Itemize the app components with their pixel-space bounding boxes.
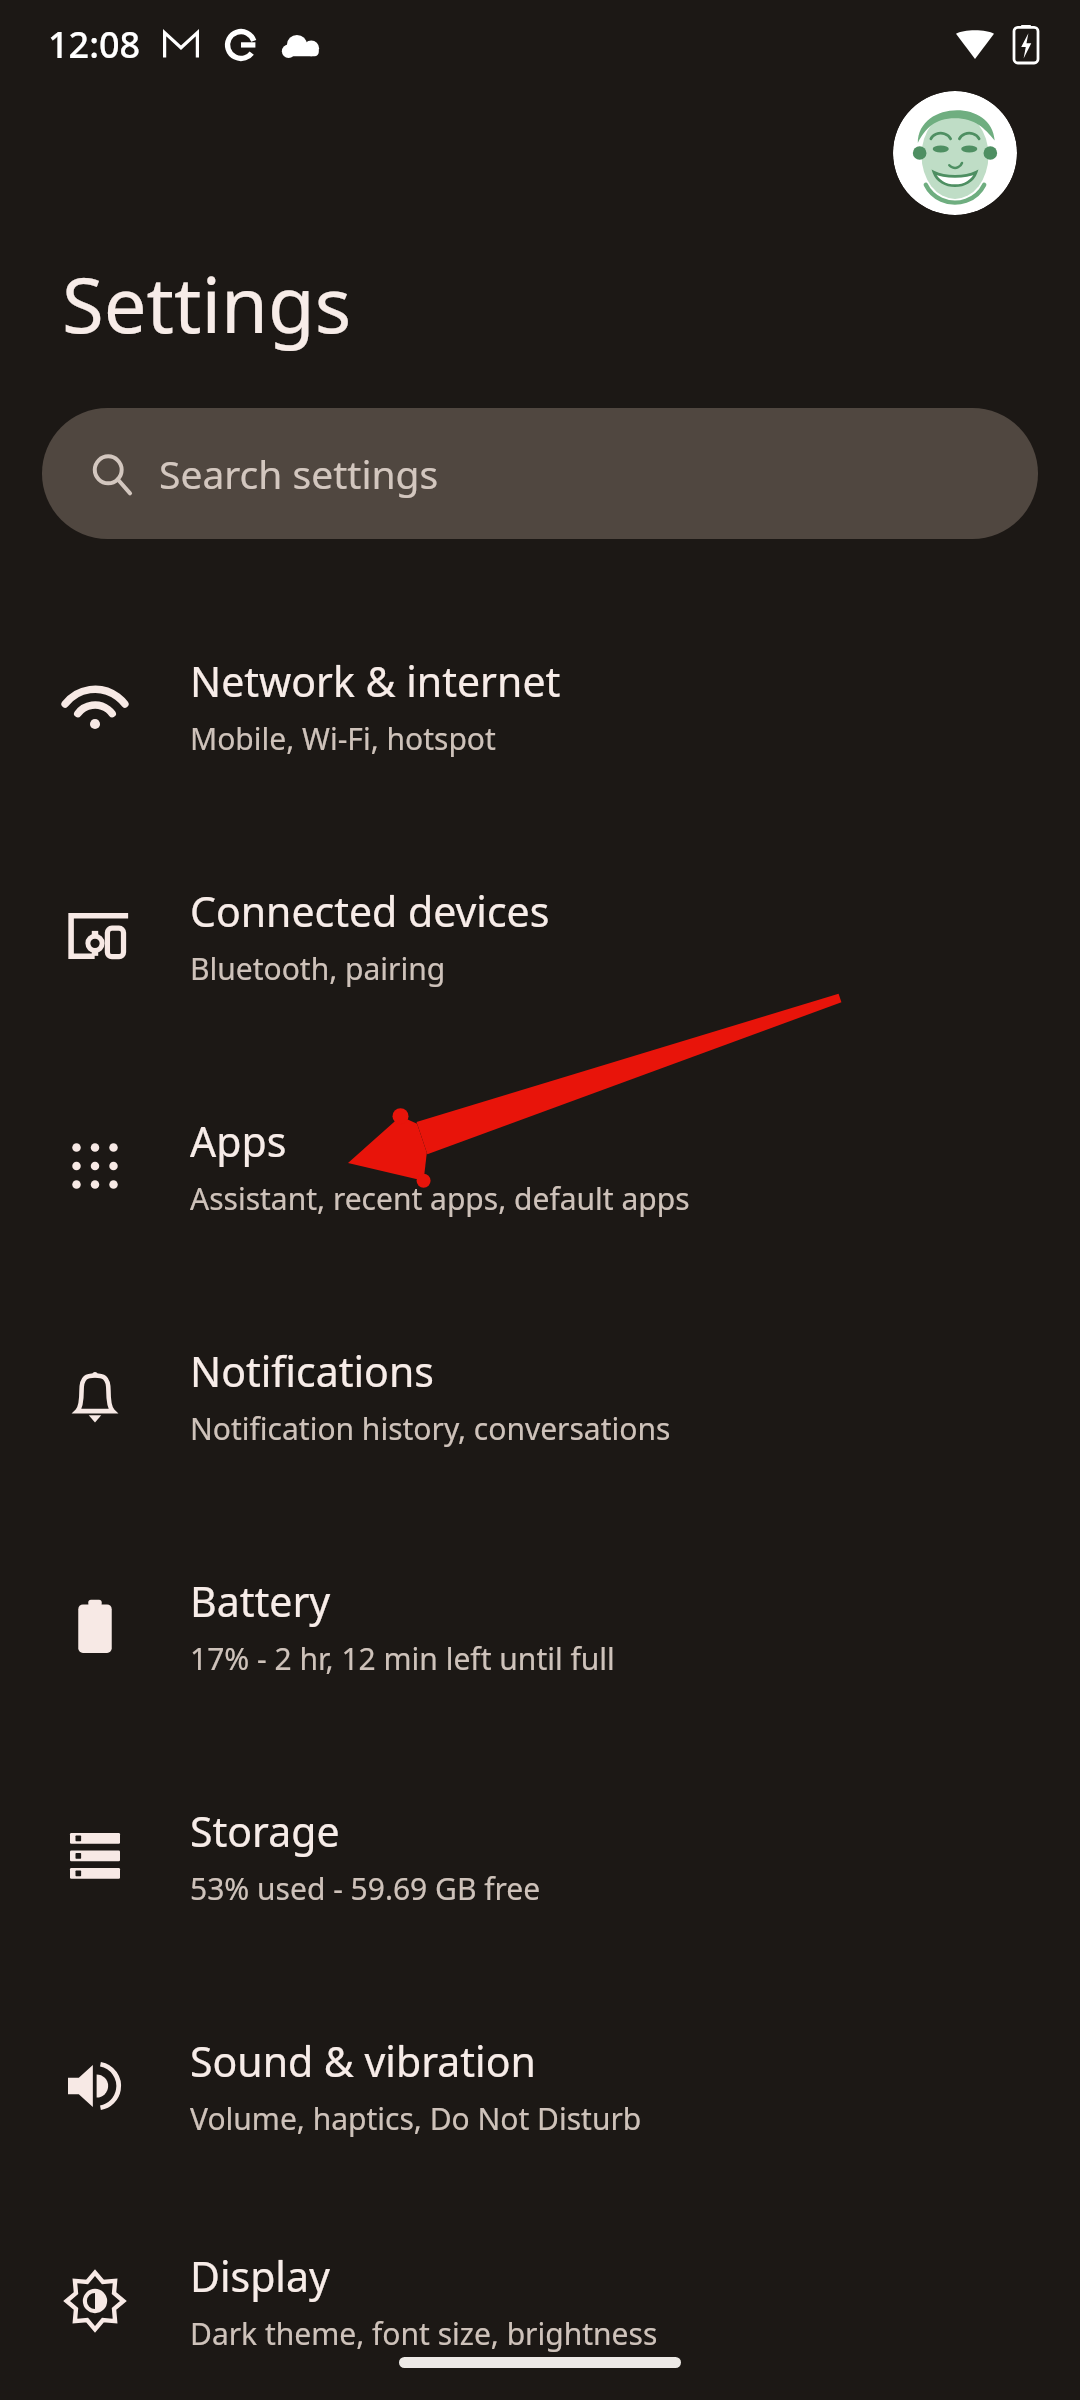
button[interactable]: Display <box>0 2201 1080 2400</box>
button[interactable]: Battery <box>0 1511 1080 1741</box>
button[interactable]: Account <box>893 91 1017 215</box>
staticText: 53% used - 59.69 GB free <box>190 1868 541 1909</box>
button[interactable]: Network & internet <box>0 591 1080 821</box>
button[interactable]: Storage <box>0 1741 1080 1971</box>
staticText: Connected devices <box>190 883 550 939</box>
staticText: Battery <box>190 1573 331 1629</box>
staticText: Sound & vibration <box>190 2033 536 2089</box>
button[interactable]: Search settings <box>42 408 1038 539</box>
button[interactable]: Apps <box>0 1051 1080 1281</box>
staticText: Mobile, Wi-Fi, hotspot <box>190 718 496 759</box>
staticText: Notifications <box>190 1343 434 1399</box>
staticText: Storage <box>190 1803 340 1859</box>
staticText: Display <box>190 2248 330 2304</box>
button[interactable]: Sound & vibration <box>0 1971 1080 2201</box>
staticText: Search settings <box>159 447 439 500</box>
staticText: Notification history, conversations <box>190 1408 671 1449</box>
staticText: Settings <box>62 252 352 356</box>
staticText: 17% - 2 hr, 12 min left until full <box>190 1638 615 1679</box>
button[interactable]: Notifications <box>0 1281 1080 1511</box>
staticText: Dark theme, font size, brightness <box>190 2313 658 2354</box>
staticText: Apps <box>190 1113 287 1169</box>
staticText: Bluetooth, pairing <box>190 948 446 989</box>
staticText: 12:08 <box>48 20 141 69</box>
staticText: Assistant, recent apps, default apps <box>190 1178 690 1219</box>
staticText: Network & internet <box>190 653 561 709</box>
button[interactable]: Connected devices <box>0 821 1080 1051</box>
staticText: Volume, haptics, Do Not Disturb <box>190 2098 642 2139</box>
